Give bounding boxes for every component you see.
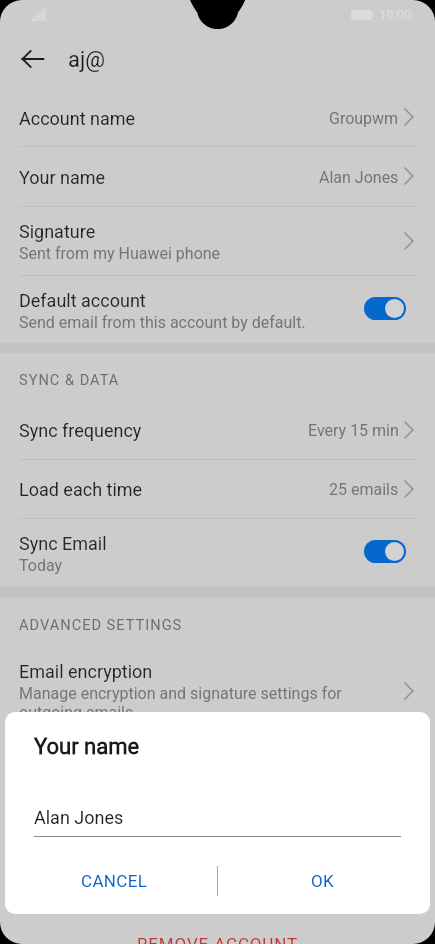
staticText: SYNC & DATA (19, 371, 120, 388)
staticText: Sync Email (19, 533, 107, 554)
staticText: CANCEL (81, 871, 148, 891)
button[interactable]: REMOVE ACCOUNT (109, 924, 326, 944)
button[interactable]: Account name (0, 88, 435, 146)
staticText: Load each time (19, 479, 143, 500)
button[interactable]: Toggle (364, 297, 406, 320)
staticText: Today (19, 556, 63, 575)
staticText: 10:00 (379, 7, 412, 22)
staticText: OK (311, 871, 335, 891)
button[interactable]: Signature (0, 206, 435, 275)
button[interactable]: CANCEL (11, 854, 218, 908)
staticText: Every 15 min (308, 421, 399, 440)
staticText: Account name (19, 108, 136, 129)
staticText: Send email from this account by default. (19, 313, 306, 332)
staticText: 25 emails (329, 480, 399, 499)
staticText: Your name (34, 734, 140, 760)
staticText: REMOVE ACCOUNT (137, 934, 298, 944)
staticText: Default account (19, 290, 146, 311)
staticText: Alan Jones (319, 168, 399, 187)
staticText: Signature (19, 221, 96, 242)
button[interactable]: Your name (0, 146, 435, 206)
button[interactable]: Email encryption (0, 647, 435, 734)
button[interactable]: Sync Email (0, 518, 435, 587)
staticText: Manage encryption and signature settings… (19, 684, 359, 722)
button[interactable]: Back (11, 37, 55, 81)
staticText: aj@ (68, 47, 105, 73)
button[interactable]: Load each time (0, 459, 435, 518)
button[interactable]: Sync frequency (0, 400, 435, 459)
button[interactable]: OK (219, 854, 426, 908)
staticText: ADVANCED SETTINGS (19, 616, 183, 633)
button[interactable]: Toggle (364, 540, 406, 563)
staticText: Sent from my Huawei phone (19, 244, 221, 263)
staticText: Alan Jones (34, 807, 124, 828)
staticText: Sync frequency (19, 420, 142, 441)
staticText: Groupwm (329, 109, 399, 128)
staticText: Email encryption (19, 661, 153, 682)
button[interactable]: Default account (0, 275, 435, 344)
staticText: Your name (19, 167, 106, 188)
